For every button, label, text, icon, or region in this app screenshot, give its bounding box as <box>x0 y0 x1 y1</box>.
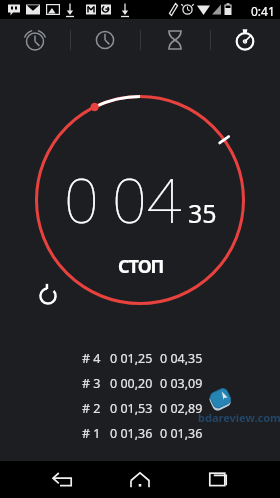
staticText: 0 01,36 <box>110 425 153 442</box>
button[interactable]: # 4 <box>0 346 280 371</box>
button[interactable]: Recents <box>199 461 236 498</box>
staticText: 0 <box>64 158 99 241</box>
staticText: 0 01,36 <box>160 425 203 442</box>
staticText: СТОП <box>118 254 164 279</box>
button[interactable]: Clock <box>70 19 140 60</box>
button[interactable]: Reset <box>29 277 66 314</box>
staticText: 0 01,53 <box>110 400 153 417</box>
button[interactable]: Stopwatch <box>210 19 280 60</box>
staticText: 0 03,09 <box>160 375 203 392</box>
staticText: 04 <box>112 158 182 241</box>
button[interactable]: # 1 <box>0 421 280 446</box>
staticText: # 2 <box>82 400 101 417</box>
button[interactable]: # 3 <box>0 371 280 396</box>
staticText: 35 <box>188 196 217 230</box>
button[interactable]: Timer <box>140 19 210 60</box>
button[interactable]: # 2 <box>0 396 280 421</box>
staticText: 0 01,25 <box>110 350 153 367</box>
button[interactable]: Back <box>44 461 81 498</box>
staticText: # 3 <box>82 375 101 392</box>
staticText: 0 02,89 <box>160 400 203 417</box>
staticText: 0 00,20 <box>110 375 153 392</box>
staticText: # 4 <box>82 350 101 367</box>
staticText: 0:41 <box>251 3 275 19</box>
button[interactable]: Home <box>121 461 158 498</box>
staticText: 0 04,35 <box>160 350 203 367</box>
button[interactable]: Alarm <box>0 19 70 60</box>
staticText: # 1 <box>82 425 101 442</box>
staticText: bdareview.com <box>198 410 280 425</box>
